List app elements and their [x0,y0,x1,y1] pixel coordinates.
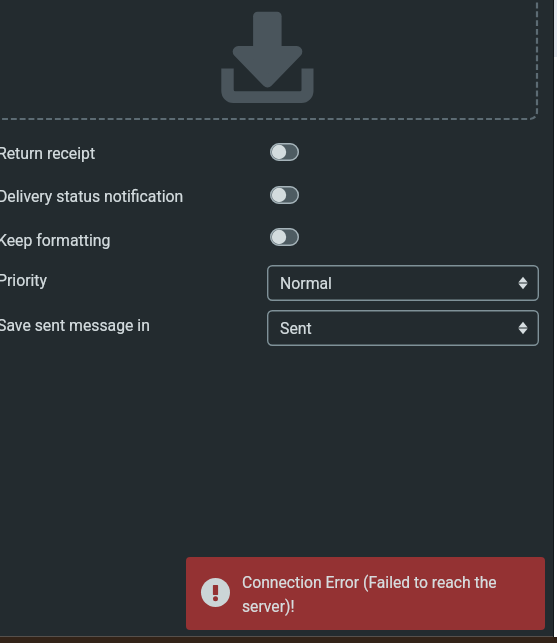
staticText: Connection Error (Failed to reach the se… [242,573,508,616]
button[interactable]: Connection Error (Failed to reach the se… [186,557,545,630]
staticText: Normal [280,274,332,293]
staticText: Sent [280,319,312,338]
button[interactable]: Delivery status notification [270,186,299,204]
button[interactable]: Priority [267,265,539,301]
staticText: Delivery status notification [0,187,184,206]
staticText: Priority [0,271,48,290]
button[interactable]: Return receipt [270,143,299,161]
button[interactable]: Keep formatting [270,228,299,246]
button[interactable]: Drop files here to attach [0,0,557,120]
staticText: Return receipt [0,144,96,163]
button[interactable]: Save sent message in [267,310,539,346]
staticText: Keep formatting [0,231,111,250]
staticText: Save sent message in [0,316,150,335]
